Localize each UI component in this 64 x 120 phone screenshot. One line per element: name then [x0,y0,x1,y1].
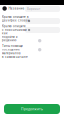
staticText: Вариант [27,7,40,11]
staticText: в самом начале [2,55,28,59]
staticText: посещение [2,48,20,51]
staticText: Название [8,7,24,10]
staticText: Продолжить [21,107,43,111]
button[interactable]: Продолжить [4,104,60,114]
staticText: подойти к решению [2,35,18,42]
staticText: Кратко опишите в [2,15,29,19]
staticText: двух-трёх словах [2,19,30,22]
staticText: Кратко опишите [2,24,26,28]
staticText: с пояснениями как [2,28,27,35]
staticText: Типы помощи [2,44,23,48]
staticText: материалов [2,52,21,55]
